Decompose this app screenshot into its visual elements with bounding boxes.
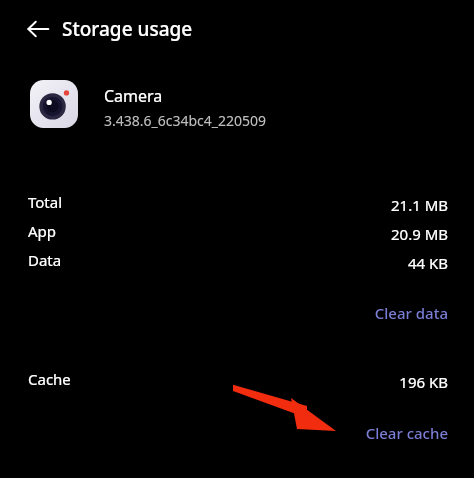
staticText: Storage usage	[62, 16, 193, 42]
staticText: App	[28, 221, 57, 241]
button[interactable]: Clear data	[298, 300, 448, 325]
staticText: 44 KB	[407, 253, 448, 273]
button[interactable]	[16, 72, 458, 136]
staticText: Cache	[28, 369, 71, 389]
staticText: Clear data	[374, 303, 448, 323]
staticText: 3.438.6_6c34bc4_220509	[104, 111, 267, 130]
button[interactable]: Back	[20, 11, 56, 47]
staticText: Total	[28, 192, 63, 212]
button[interactable]: Storage usage	[62, 13, 262, 45]
button[interactable]: Clear cache	[298, 420, 448, 445]
staticText: Data	[28, 250, 62, 270]
staticText: 20.9 MB	[390, 224, 448, 244]
staticText: Clear cache	[365, 423, 448, 443]
staticText: 196 KB	[399, 372, 448, 392]
staticText: 21.1 MB	[390, 195, 448, 215]
staticText: Camera	[104, 85, 163, 107]
